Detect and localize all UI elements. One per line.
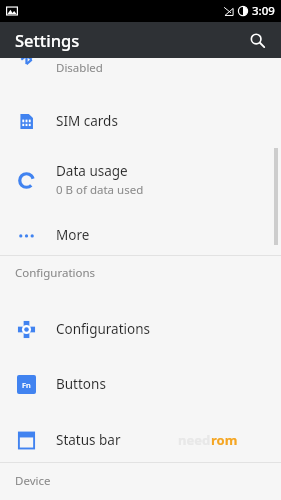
button[interactable]: Data usage (0, 152, 281, 208)
staticText: need (178, 431, 211, 449)
staticText: SIM cards (56, 112, 118, 130)
button[interactable]: Search (244, 27, 270, 53)
staticText: Settings (15, 29, 80, 51)
button[interactable]: Status bar (0, 414, 281, 466)
staticText: Disabled (56, 60, 103, 76)
button[interactable]: More (0, 209, 281, 261)
staticText: Buttons (56, 375, 106, 393)
staticText: 0 B of data used (56, 182, 144, 198)
staticText: Fn (22, 380, 31, 390)
staticText: More (56, 226, 90, 244)
staticText: Status bar (56, 431, 121, 449)
staticText: Configurations (56, 320, 151, 338)
staticText: Device (15, 473, 51, 489)
staticText: Configurations (15, 265, 96, 281)
staticText: Data usage (56, 162, 128, 180)
staticText: 3:09 (252, 3, 275, 19)
staticText: rom (211, 431, 238, 449)
button[interactable]: Fn (0, 358, 281, 410)
button[interactable]: Disabled (0, 40, 281, 80)
button[interactable]: Configurations (0, 303, 281, 355)
button[interactable]: SIM cards (0, 95, 281, 147)
